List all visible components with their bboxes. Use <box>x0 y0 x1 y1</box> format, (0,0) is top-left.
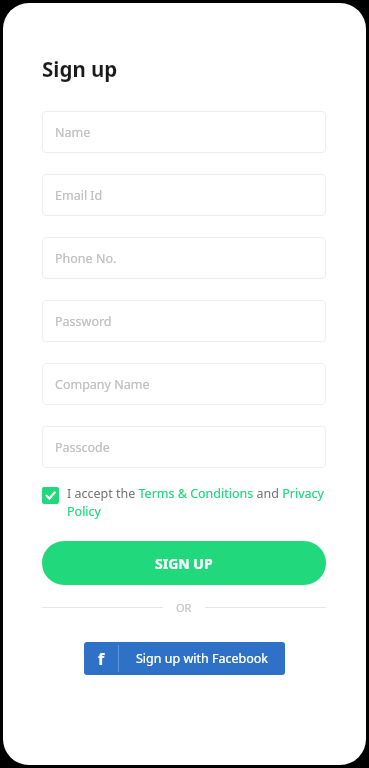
staticText: Passcode <box>55 439 110 456</box>
staticText: Sign up <box>42 55 118 83</box>
other: Accept terms checkbox <box>42 487 59 504</box>
staticText: Name <box>55 124 91 141</box>
staticText: SIGN UP <box>155 554 213 573</box>
staticText: Sign up with Facebook <box>136 650 268 667</box>
staticText: f <box>98 648 105 670</box>
button[interactable]: Company Name <box>42 363 326 405</box>
button[interactable]: SIGN UP <box>42 541 326 585</box>
button[interactable]: Email Id <box>42 174 326 216</box>
staticText: Password <box>55 313 112 330</box>
staticText: Company Name <box>55 376 150 393</box>
button[interactable]: Phone No. <box>42 237 326 279</box>
button[interactable]: Password <box>42 300 326 342</box>
staticText: Email Id <box>55 187 103 204</box>
staticText: Phone No. <box>55 250 117 267</box>
staticText: OR <box>176 600 192 615</box>
button[interactable]: Passcode <box>42 426 326 468</box>
button[interactable]: Name <box>42 111 326 153</box>
staticText: I accept the Terms & Conditions and Priv… <box>67 485 326 520</box>
button[interactable]: f <box>84 642 285 675</box>
button[interactable]: Accept terms checkbox <box>42 485 326 520</box>
